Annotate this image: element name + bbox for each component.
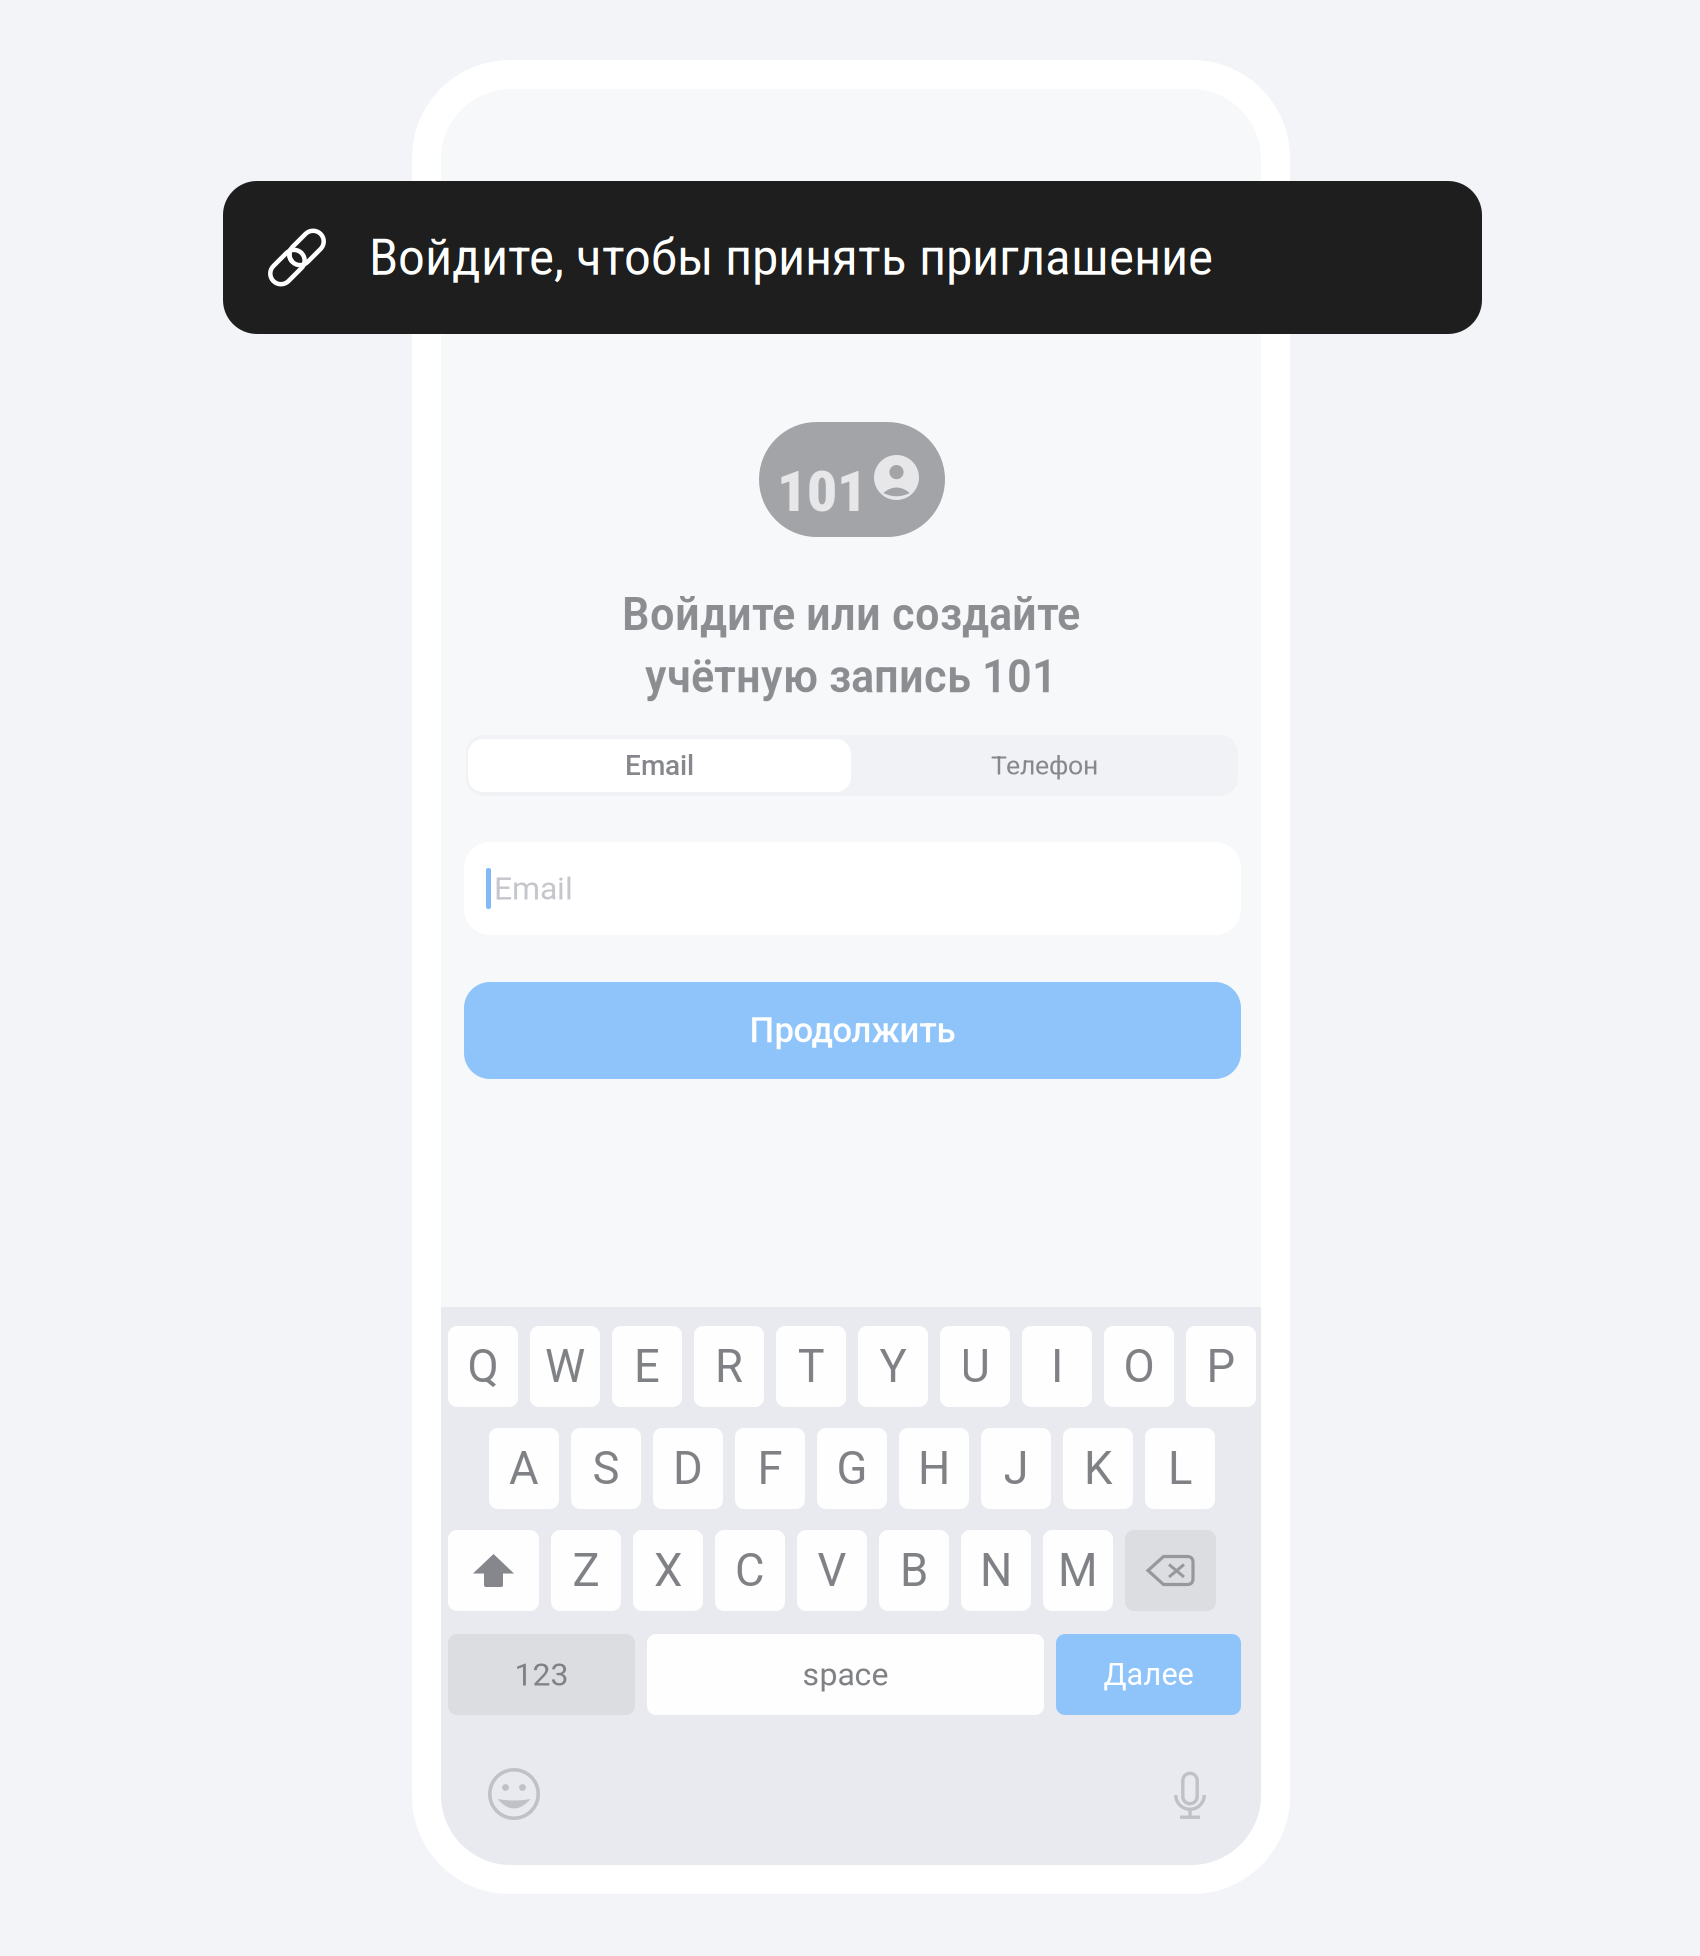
- button[interactable]: J: [981, 1428, 1051, 1509]
- button[interactable]: Далее: [1056, 1634, 1241, 1715]
- staticText: J: [1003, 1442, 1028, 1495]
- button[interactable]: P: [1186, 1326, 1256, 1407]
- staticText: P: [1206, 1340, 1235, 1393]
- staticText: Войдите, чтобы принять приглашение: [369, 228, 1213, 287]
- button[interactable]: Emoji: [488, 1768, 540, 1820]
- staticText: S: [592, 1442, 619, 1495]
- staticText: C: [735, 1544, 765, 1597]
- staticText: Email: [494, 870, 573, 907]
- button[interactable]: Delete: [1125, 1530, 1216, 1611]
- staticText: R: [715, 1340, 743, 1393]
- button[interactable]: B: [879, 1530, 949, 1611]
- button[interactable]: T: [776, 1326, 846, 1407]
- staticText: W: [545, 1340, 585, 1393]
- staticText: N: [980, 1544, 1012, 1597]
- button[interactable]: I: [1022, 1326, 1092, 1407]
- button[interactable]: L: [1145, 1428, 1215, 1509]
- button[interactable]: H: [899, 1428, 969, 1509]
- button[interactable]: Телефон: [853, 739, 1236, 792]
- staticText: Далее: [1103, 1656, 1193, 1692]
- staticText: Z: [572, 1544, 599, 1597]
- button[interactable]: V: [797, 1530, 867, 1611]
- button[interactable]: Продолжить: [464, 982, 1241, 1079]
- button[interactable]: U: [940, 1326, 1010, 1407]
- button[interactable]: Войдите, чтобы принять приглашение: [223, 181, 1482, 334]
- staticText: 101: [777, 459, 867, 525]
- staticText: space: [802, 1656, 888, 1693]
- staticText: F: [757, 1442, 782, 1495]
- staticText: Email: [625, 749, 694, 782]
- staticText: X: [654, 1544, 682, 1597]
- button[interactable]: D: [653, 1428, 723, 1509]
- staticText: I: [1051, 1340, 1063, 1393]
- staticText: A: [509, 1442, 539, 1495]
- staticText: V: [817, 1544, 846, 1597]
- staticText: E: [634, 1340, 660, 1393]
- button[interactable]: C: [715, 1530, 785, 1611]
- staticText: Q: [467, 1340, 498, 1393]
- staticText: U: [960, 1340, 989, 1393]
- button[interactable]: Email: [468, 739, 851, 792]
- button[interactable]: A: [489, 1428, 559, 1509]
- button[interactable]: W: [530, 1326, 600, 1407]
- button[interactable]: Email: [464, 842, 1241, 935]
- staticText: T: [797, 1340, 824, 1393]
- staticText: H: [918, 1442, 950, 1495]
- button[interactable]: X: [633, 1530, 703, 1611]
- staticText: G: [836, 1442, 867, 1495]
- staticText: B: [900, 1544, 928, 1597]
- button[interactable]: F: [735, 1428, 805, 1509]
- staticText: D: [673, 1442, 703, 1495]
- button[interactable]: R: [694, 1326, 764, 1407]
- button[interactable]: M: [1043, 1530, 1113, 1611]
- staticText: K: [1084, 1442, 1112, 1495]
- button[interactable]: Numbers: [448, 1634, 635, 1715]
- button[interactable]: Q: [448, 1326, 518, 1407]
- button[interactable]: N: [961, 1530, 1031, 1611]
- button[interactable]: Z: [551, 1530, 621, 1611]
- staticText: L: [1168, 1442, 1192, 1495]
- button[interactable]: O: [1104, 1326, 1174, 1407]
- button[interactable]: E: [612, 1326, 682, 1407]
- button[interactable]: space: [647, 1634, 1044, 1715]
- staticText: M: [1058, 1544, 1098, 1597]
- button[interactable]: K: [1063, 1428, 1133, 1509]
- staticText: Телефон: [991, 750, 1098, 781]
- staticText: 123: [514, 1656, 568, 1693]
- staticText: Продолжить: [749, 1010, 955, 1051]
- button[interactable]: S: [571, 1428, 641, 1509]
- button[interactable]: Dictation: [1175, 1771, 1205, 1819]
- staticText: Войдите или создайте: [622, 588, 1080, 641]
- staticText: учётную запись 101: [645, 650, 1057, 703]
- button[interactable]: Y: [858, 1326, 928, 1407]
- button[interactable]: Shift: [448, 1530, 539, 1611]
- staticText: Y: [879, 1340, 906, 1393]
- button[interactable]: G: [817, 1428, 887, 1509]
- staticText: O: [1123, 1340, 1154, 1393]
